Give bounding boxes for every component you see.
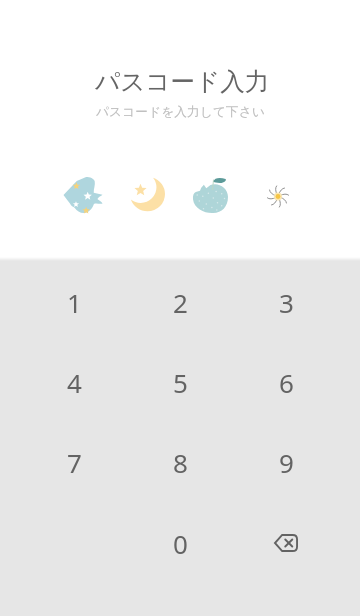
button[interactable]: 7 <box>21 422 127 502</box>
button[interactable]: 3 <box>233 262 339 342</box>
button[interactable]: Delete <box>233 503 339 583</box>
staticText: 8 <box>173 445 188 480</box>
staticText: 1 <box>67 285 82 320</box>
button[interactable]: 2 <box>127 262 233 342</box>
button[interactable]: 4 <box>21 342 127 422</box>
staticText: 2 <box>173 285 188 320</box>
staticText: パスコード入力 <box>95 66 270 97</box>
staticText: 4 <box>67 365 82 400</box>
button[interactable]: 1 <box>21 262 127 342</box>
button[interactable]: 8 <box>127 422 233 502</box>
button[interactable]: 6 <box>233 342 339 422</box>
button[interactable]: 0 <box>127 503 233 583</box>
staticText: 0 <box>173 526 188 561</box>
staticText: 3 <box>279 285 294 320</box>
staticText: 9 <box>279 445 294 480</box>
button[interactable]: 5 <box>127 342 233 422</box>
button[interactable]: 9 <box>233 422 339 502</box>
staticText: 6 <box>279 365 294 400</box>
staticText: 7 <box>67 445 82 480</box>
staticText: パスコードを入力して下さい <box>96 104 265 120</box>
staticText: 5 <box>173 365 188 400</box>
